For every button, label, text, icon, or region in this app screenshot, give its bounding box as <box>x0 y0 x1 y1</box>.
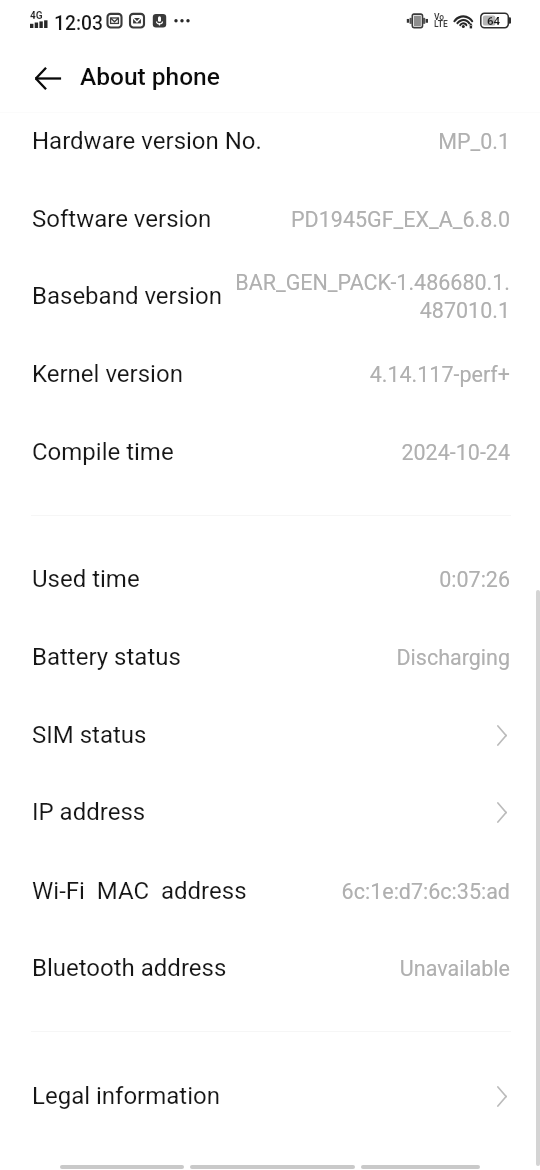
button[interactable]: IP address <box>0 773 540 851</box>
button[interactable]: Wi-Fi MAC address <box>0 852 540 930</box>
button[interactable]: Battery status <box>0 618 540 696</box>
staticText: LTE <box>434 19 448 29</box>
staticText: Software version <box>32 205 212 233</box>
staticText: Hardware version No. <box>32 127 262 155</box>
staticText: Compile time <box>32 438 174 466</box>
staticText: PD1945GF_EX_A_6.8.0 <box>291 207 510 232</box>
staticText: 0:07:26 <box>439 567 510 592</box>
staticText: IP address <box>32 798 146 826</box>
staticText: Battery status <box>32 643 181 671</box>
staticText: 64 <box>487 14 501 27</box>
staticText: 4.14.117-perf+ <box>369 362 510 387</box>
staticText: MP_0.1 <box>438 129 510 154</box>
button[interactable]: Back <box>25 55 71 101</box>
staticText: Unavailable <box>399 956 510 981</box>
button[interactable]: Recent apps <box>60 1155 184 1170</box>
staticText: About phone <box>80 62 220 91</box>
staticText: 12:03 <box>54 12 103 35</box>
button[interactable]: Home <box>190 1155 355 1170</box>
staticText: BAR_GEN_PACK-1.486680.1.487010.1 <box>230 270 510 323</box>
staticText: Wi-Fi MAC address <box>32 877 247 905</box>
button[interactable]: Back <box>361 1155 480 1170</box>
button[interactable]: Baseband version <box>0 257 540 335</box>
button[interactable]: Legal information <box>0 1057 540 1135</box>
staticText: Legal information <box>32 1082 220 1110</box>
staticText: Used time <box>32 565 140 593</box>
button[interactable]: Kernel version <box>0 335 540 413</box>
staticText: 2024-10-24 <box>401 440 510 465</box>
staticText: Baseband version <box>32 282 222 310</box>
staticText: Kernel version <box>32 360 183 388</box>
button[interactable]: SIM status <box>0 696 540 774</box>
button[interactable]: Hardware version No. <box>0 102 540 180</box>
staticText: 6c:1e:d7:6c:35:ad <box>341 879 510 904</box>
button[interactable]: Software version <box>0 180 540 258</box>
button[interactable]: Used time <box>0 540 540 618</box>
staticText: Bluetooth address <box>32 954 227 982</box>
button[interactable]: Bluetooth address <box>0 929 540 1007</box>
staticText: Vo <box>434 12 445 22</box>
staticText: Discharging <box>396 645 510 670</box>
staticText: SIM status <box>32 721 147 749</box>
button[interactable]: Compile time <box>0 413 540 491</box>
staticText: 4G <box>30 10 43 22</box>
